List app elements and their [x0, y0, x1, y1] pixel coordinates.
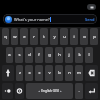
staticText: What's your name? — [14, 17, 50, 22]
button[interactable]: Symbols — [2, 83, 13, 99]
staticText: z — [19, 70, 21, 76]
staticText: b — [58, 70, 61, 76]
button[interactable]: Send — [85, 17, 95, 22]
staticText: u — [63, 34, 66, 40]
button[interactable]: s — [15, 47, 23, 63]
button[interactable]: b — [55, 65, 63, 81]
button[interactable]: l — [85, 47, 93, 63]
button[interactable]: t — [40, 28, 48, 45]
staticText: Send — [85, 17, 95, 22]
staticText: g — [48, 52, 51, 58]
button[interactable]: r — [30, 28, 38, 45]
button[interactable]: i — [70, 28, 78, 45]
staticText: . — [78, 88, 80, 94]
button[interactable]: m — [75, 65, 83, 81]
staticText: a — [8, 52, 11, 58]
button[interactable]: ◄ — [26, 83, 73, 99]
button[interactable]: x — [25, 65, 33, 81]
staticText: j — [68, 52, 70, 58]
staticText: c — [38, 70, 41, 76]
staticText: f — [38, 52, 40, 58]
staticText: n — [68, 70, 71, 76]
staticText: e — [23, 34, 26, 40]
staticText: t — [43, 34, 45, 40]
button[interactable]: Settings — [15, 83, 24, 99]
button[interactable]: f — [35, 47, 43, 63]
button[interactable]: Profile — [3, 14, 97, 24]
button[interactable]: . — [75, 83, 83, 99]
staticText: x — [28, 70, 31, 76]
button[interactable]: Shift — [2, 65, 14, 81]
button[interactable]: q — [2, 28, 9, 45]
button[interactable]: More options — [87, 4, 96, 10]
staticText: h — [58, 52, 61, 58]
button[interactable]: d — [25, 47, 33, 63]
button[interactable]: a — [6, 47, 13, 63]
staticText: d — [28, 52, 31, 58]
staticText: q — [4, 34, 7, 40]
staticText: ◄ — [38, 90, 40, 93]
button[interactable]: e — [20, 28, 28, 45]
staticText: l — [88, 52, 90, 58]
button[interactable]: Profile — [5, 16, 12, 23]
staticText: s — [18, 52, 21, 58]
staticText: k — [78, 52, 81, 58]
button[interactable]: z — [16, 65, 23, 81]
staticText: i — [73, 34, 75, 40]
staticText: y — [53, 34, 56, 40]
button[interactable]: o — [80, 28, 88, 45]
button[interactable]: u — [60, 28, 68, 45]
button[interactable]: v — [45, 65, 53, 81]
button[interactable]: y — [50, 28, 58, 45]
button[interactable]: Enter — [85, 83, 98, 99]
staticText: w — [13, 34, 17, 40]
button[interactable]: j — [65, 47, 73, 63]
button[interactable]: n — [65, 65, 73, 81]
button[interactable]: g — [45, 47, 53, 63]
button[interactable]: Backspace — [85, 65, 98, 81]
button[interactable]: h — [55, 47, 63, 63]
staticText: English (US) — [41, 89, 59, 93]
button[interactable]: k — [75, 47, 83, 63]
button[interactable]: w — [11, 28, 18, 45]
button[interactable]: c — [35, 65, 43, 81]
staticText: ► — [60, 90, 62, 93]
staticText: v — [48, 70, 51, 76]
staticText: r — [33, 34, 35, 40]
button[interactable]: p — [90, 28, 98, 45]
staticText: p — [93, 34, 96, 40]
staticText: o — [83, 34, 86, 40]
staticText: m — [77, 70, 81, 76]
